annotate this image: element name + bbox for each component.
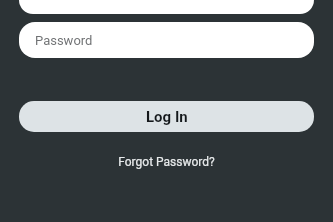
staticText: Log In xyxy=(146,108,188,126)
button[interactable]: Password xyxy=(19,22,314,58)
staticText: Password xyxy=(35,33,93,48)
button[interactable]: Email xyxy=(19,0,314,14)
button[interactable]: Log In xyxy=(19,101,314,132)
button[interactable]: Forgot Password? xyxy=(110,151,223,173)
